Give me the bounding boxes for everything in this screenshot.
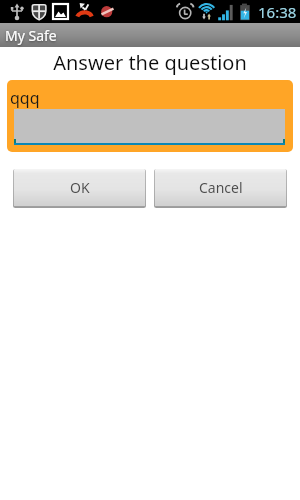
- staticText: OK: [70, 178, 90, 197]
- staticText: qqq: [10, 87, 40, 109]
- button[interactable]: Cancel: [154, 169, 287, 208]
- staticText: My Safe: [5, 26, 57, 45]
- staticText: Answer the question: [0, 49, 300, 76]
- staticText: Cancel: [199, 178, 243, 197]
- staticText: 16:38: [258, 2, 297, 22]
- button[interactable]: OK: [13, 169, 146, 208]
